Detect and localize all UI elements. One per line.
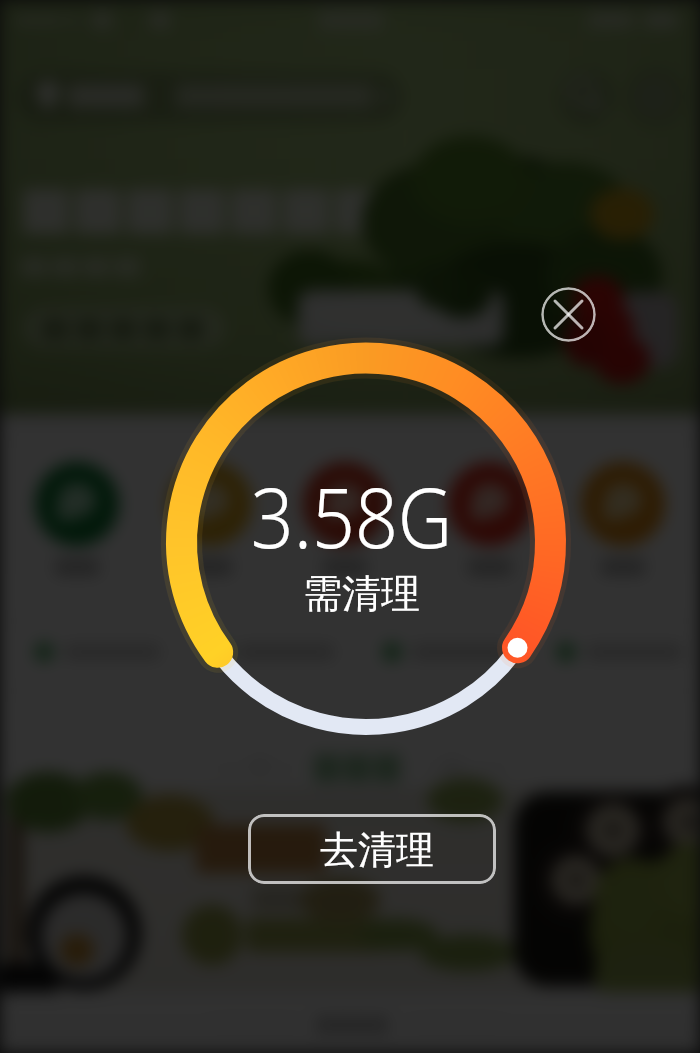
staticText: 去清理 — [320, 826, 434, 874]
button[interactable]: 去清理 — [248, 814, 496, 884]
staticText: 需清理 — [303, 569, 420, 618]
button[interactable]: Close — [541, 287, 596, 342]
staticText: 3.58G — [251, 459, 452, 572]
